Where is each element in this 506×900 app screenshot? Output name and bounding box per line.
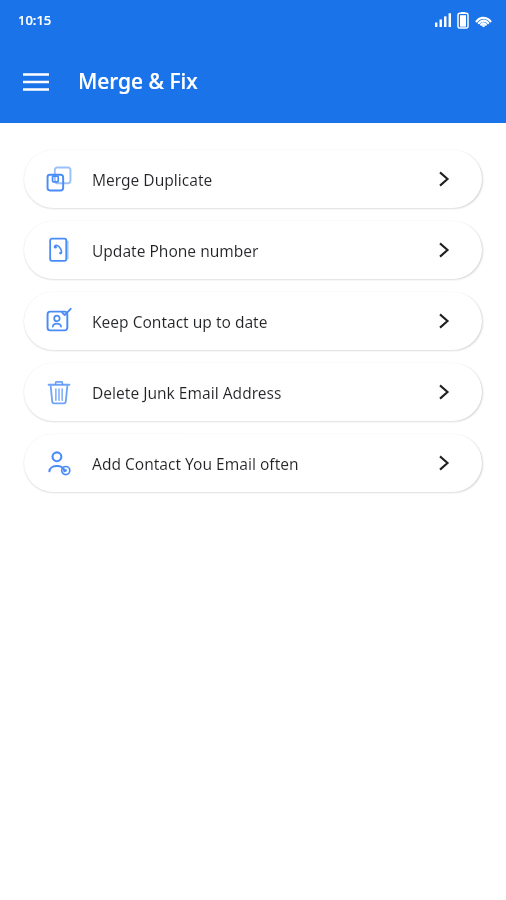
- staticText: Delete Junk Email Address: [92, 382, 434, 403]
- staticText: Merge & Fix: [78, 67, 198, 96]
- button[interactable]: Keep Contact up to date: [24, 292, 482, 350]
- staticText: Merge Duplicate: [92, 169, 434, 190]
- staticText: 10:15: [18, 11, 52, 29]
- button[interactable]: Add Contact You Email often: [24, 434, 482, 492]
- button[interactable]: Update Phone number: [24, 221, 482, 279]
- staticText: Add Contact You Email often: [92, 453, 434, 474]
- button[interactable]: Open navigation menu: [12, 58, 60, 106]
- button[interactable]: Merge Duplicate: [24, 150, 482, 208]
- staticText: Update Phone number: [92, 240, 434, 261]
- staticText: Keep Contact up to date: [92, 311, 434, 332]
- button[interactable]: Delete Junk Email Address: [24, 363, 482, 421]
